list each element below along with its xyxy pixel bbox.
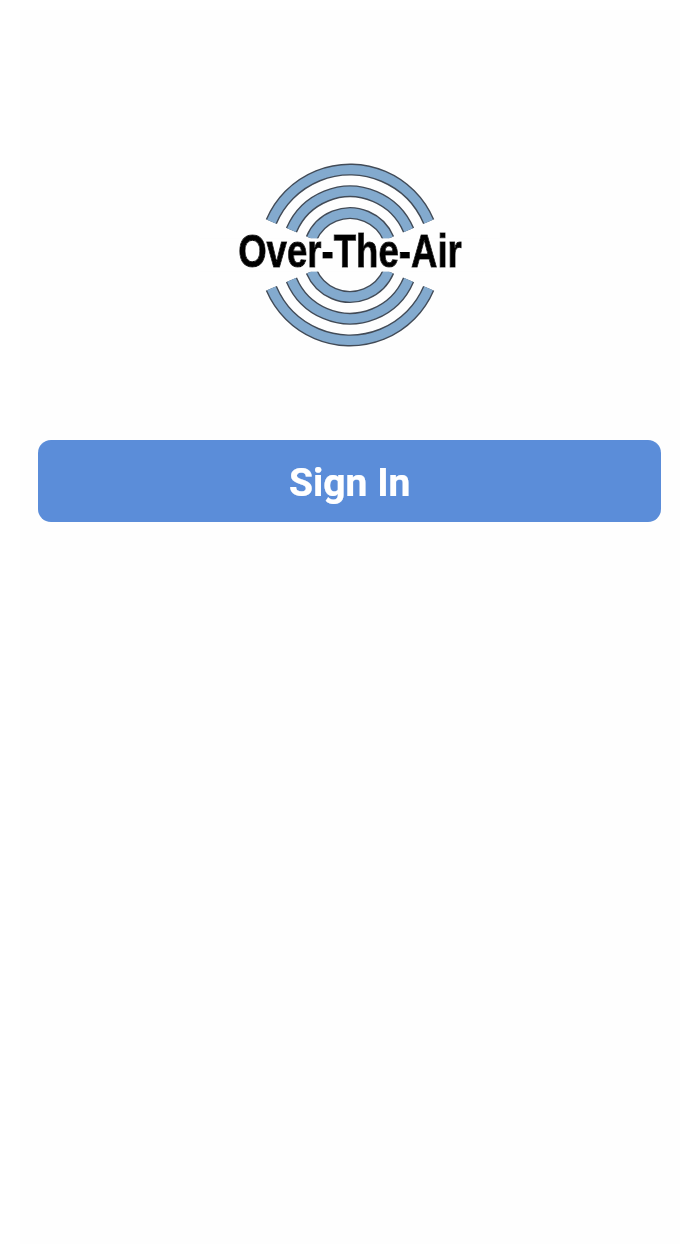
staticText: Sign In [289, 460, 411, 506]
other: Over-The-Air logo [200, 145, 500, 345]
staticText: Over-The-Air [238, 225, 462, 278]
staticText: Over-The-Air [238, 225, 462, 278]
button[interactable]: Sign In [38, 440, 661, 522]
